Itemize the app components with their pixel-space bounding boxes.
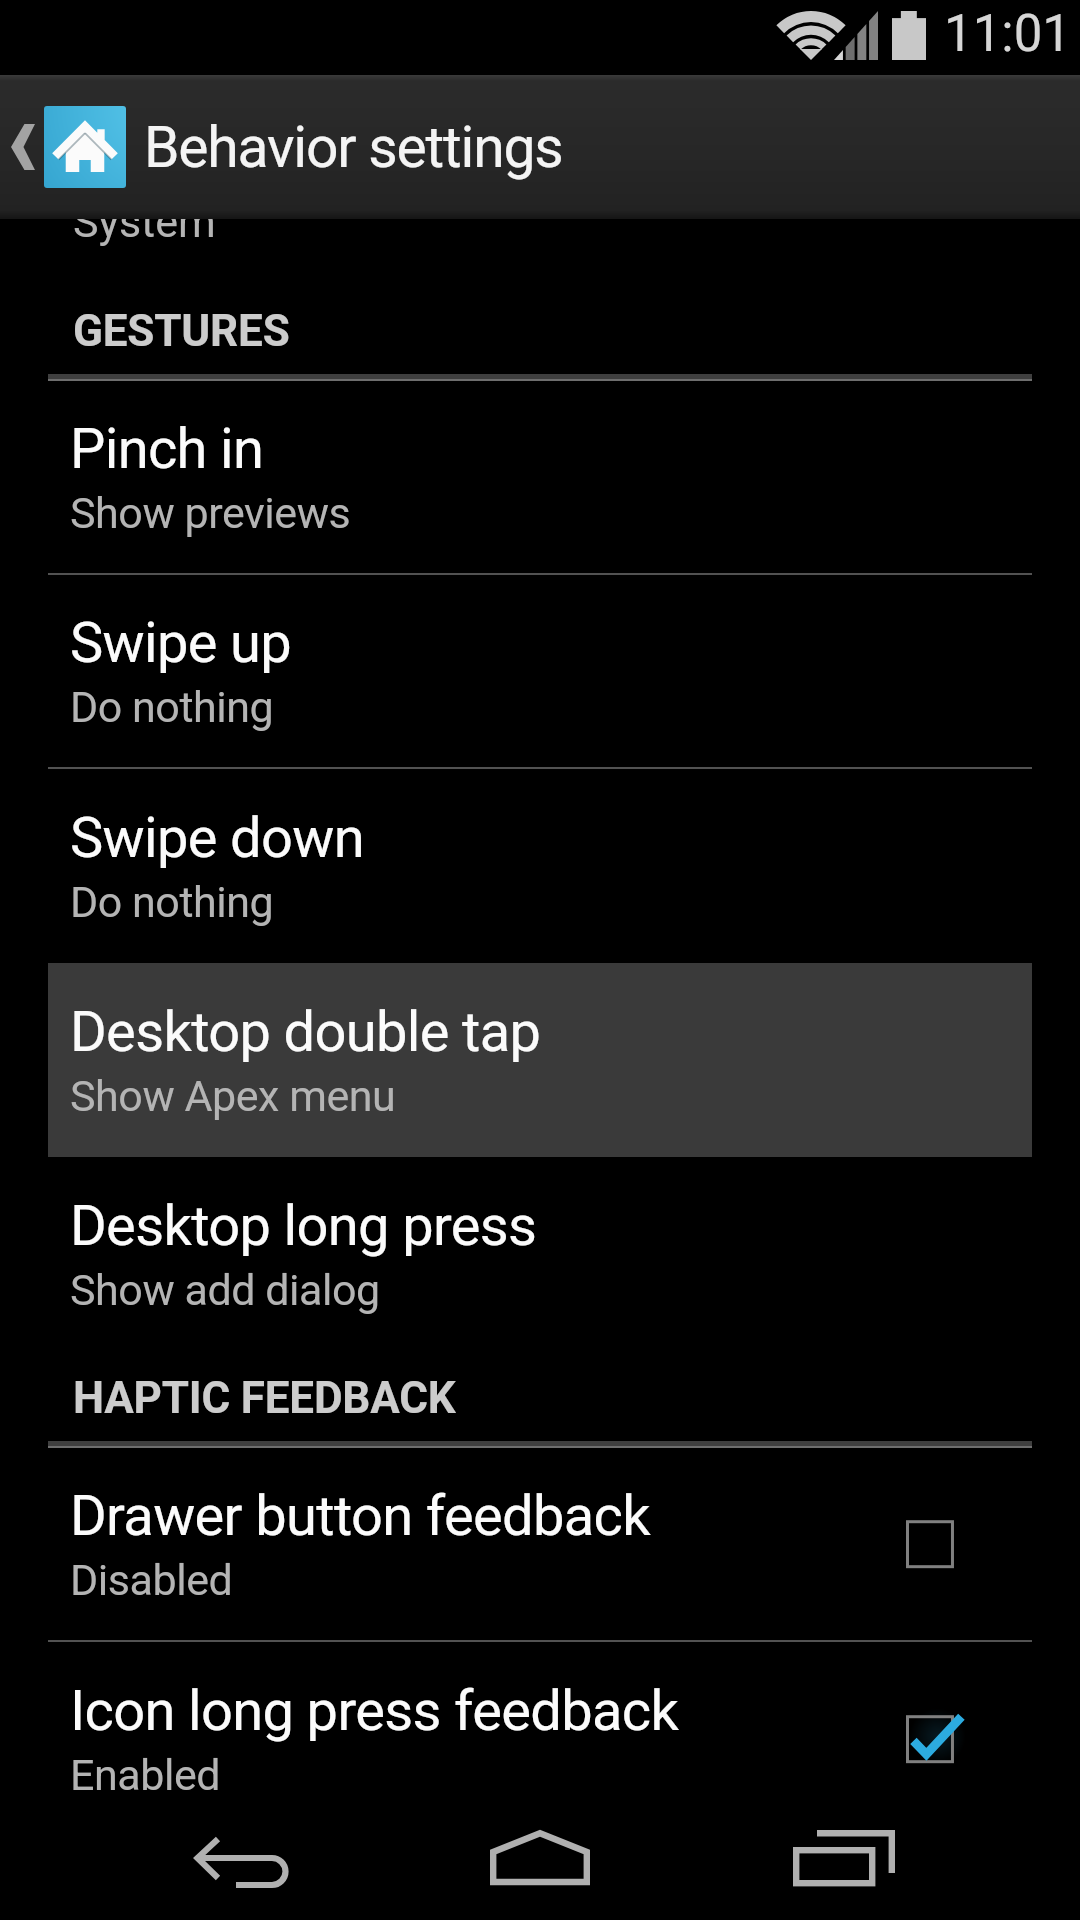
staticText: Swipe down: [70, 805, 365, 871]
staticText: 11:01: [944, 4, 1072, 64]
staticText: Desktop long press: [70, 1193, 537, 1259]
button[interactable]: Pinch in: [48, 381, 1032, 573]
button[interactable]: Desktop long press: [48, 1157, 1032, 1351]
staticText: Pinch in: [70, 416, 264, 482]
staticText: HAPTIC FEEDBACK: [73, 1372, 456, 1424]
button[interactable]: Back: [180, 1828, 300, 1920]
button[interactable]: Icon long press feedback: [48, 1642, 1032, 1836]
button[interactable]: Navigate up: [0, 75, 135, 219]
staticText: Disabled: [70, 1555, 233, 1605]
button[interactable]: Enabled: [906, 1700, 984, 1778]
button[interactable]: Swipe up: [48, 575, 1032, 767]
button[interactable]: Disabled: [906, 1505, 984, 1583]
staticText: Drawer button feedback: [70, 1483, 650, 1549]
button[interactable]: Drawer button feedback: [48, 1448, 1032, 1640]
staticText: System: [73, 197, 216, 247]
staticText: Do nothing: [70, 877, 274, 927]
button[interactable]: Desktop double tap: [48, 963, 1032, 1157]
staticText: Swipe up: [70, 610, 292, 676]
staticText: Enabled: [70, 1750, 221, 1800]
staticText: Show previews: [70, 488, 351, 538]
staticText: Behavior settings: [144, 114, 563, 181]
staticText: Do nothing: [70, 682, 274, 732]
staticText: Desktop double tap: [70, 999, 541, 1065]
button[interactable]: Home: [465, 1828, 615, 1920]
staticText: GESTURES: [73, 305, 290, 357]
staticText: Icon long press feedback: [70, 1678, 679, 1744]
button[interactable]: Recent apps: [770, 1828, 920, 1920]
staticText: Show Apex menu: [70, 1071, 396, 1121]
button[interactable]: Swipe down: [48, 769, 1032, 963]
staticText: Show add dialog: [70, 1265, 380, 1315]
